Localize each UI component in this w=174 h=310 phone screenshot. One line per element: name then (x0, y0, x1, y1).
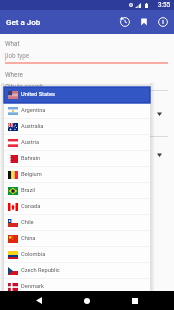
button[interactable]: Canada (4, 199, 150, 215)
staticText: Colombia (21, 251, 46, 258)
staticText: Argentina (21, 107, 46, 114)
staticText: Australia (21, 123, 44, 130)
staticText: Brazil (21, 187, 36, 194)
button[interactable]: Denmark (4, 279, 150, 295)
button[interactable]: Recent apps (116, 291, 154, 310)
staticText: Canada (21, 203, 41, 210)
staticText: Get a Job (6, 18, 41, 27)
button[interactable]: Australia (4, 119, 150, 135)
button[interactable]: China (4, 231, 150, 247)
staticText: China (21, 235, 36, 242)
button[interactable]: Austria (4, 135, 150, 151)
button[interactable]: Brazil (4, 183, 150, 199)
staticText: Job type (5, 52, 30, 59)
button[interactable]: United States (4, 87, 150, 103)
button[interactable]: Bahrain (4, 151, 150, 167)
staticText: Where (5, 71, 23, 78)
staticText: Bahrain (21, 155, 41, 162)
staticText: Austria (21, 139, 40, 146)
staticText: Czech Republic (21, 267, 60, 274)
button[interactable]: Czech Republic (4, 263, 150, 279)
button[interactable]: Back (20, 291, 58, 310)
staticText: 3:55 (158, 1, 171, 8)
button[interactable]: History (115, 10, 134, 34)
staticText: Chile (21, 219, 34, 226)
button[interactable]: Chile (4, 215, 150, 231)
button[interactable]: About (153, 10, 172, 34)
button[interactable]: Argentina (4, 103, 150, 119)
button[interactable]: Bookmarks (134, 10, 153, 34)
staticText: Belgium (21, 171, 42, 178)
staticText: What (5, 40, 20, 47)
staticText: City to search (5, 83, 44, 90)
button[interactable]: Home (68, 291, 106, 310)
button[interactable]: Belgium (4, 167, 150, 183)
staticText: United States (21, 91, 55, 98)
staticText: Denmark (21, 283, 44, 290)
button[interactable]: Colombia (4, 247, 150, 263)
